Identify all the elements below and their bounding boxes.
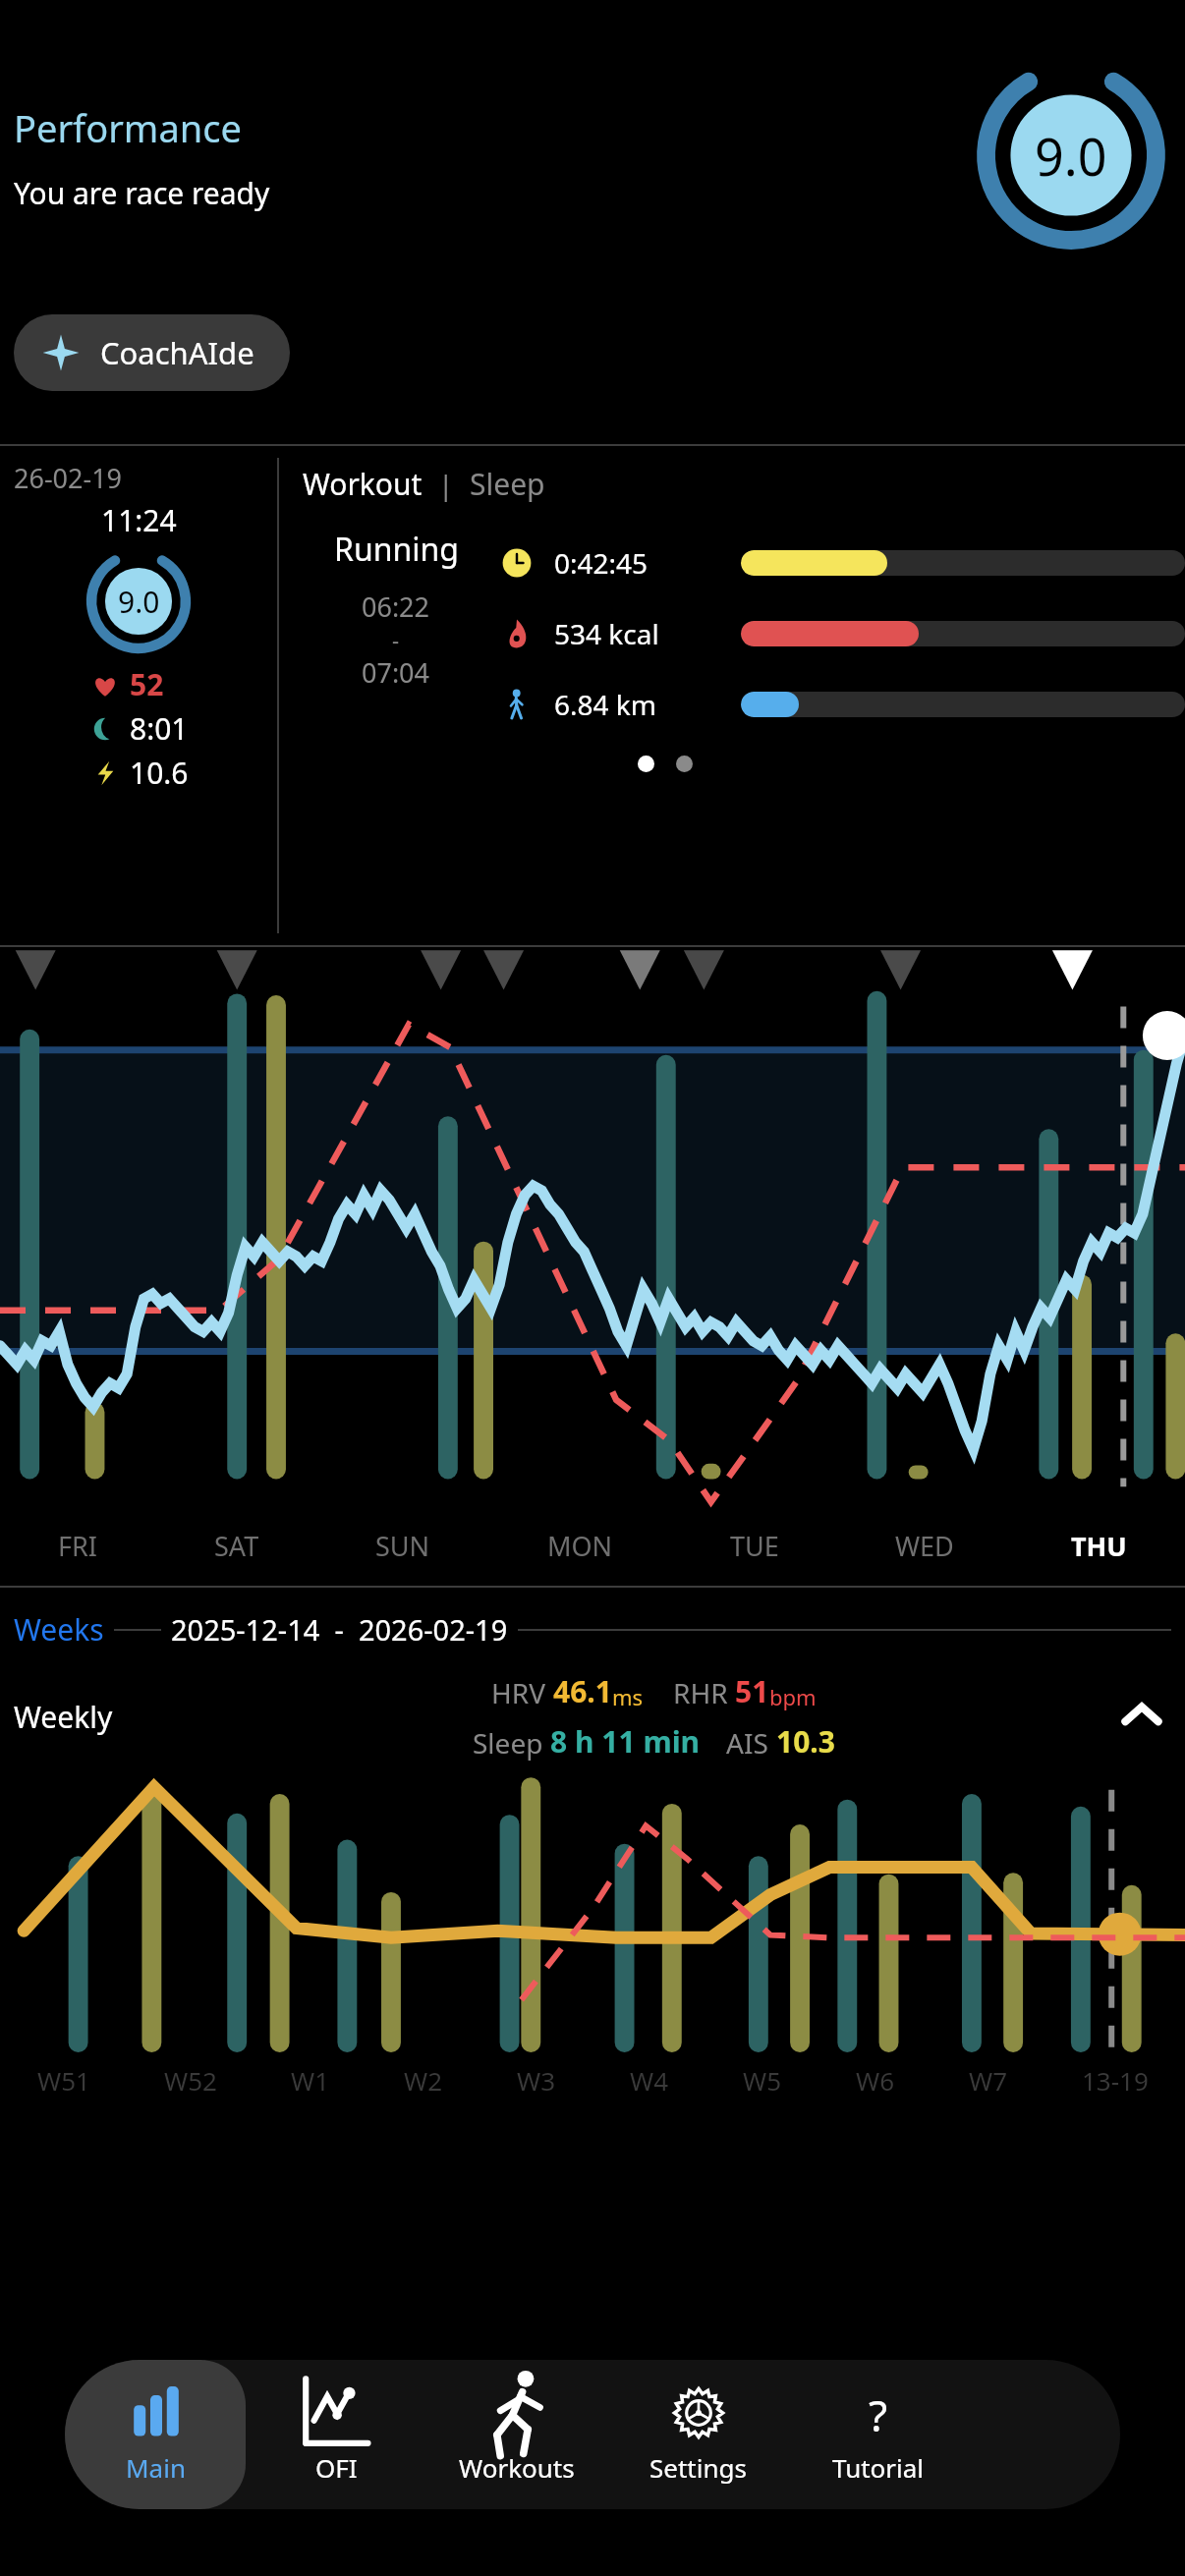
staticText: Sleep [470, 464, 545, 504]
staticText: Running [334, 528, 459, 571]
staticText: 10.6 [130, 753, 189, 793]
button[interactable]: CoachAIde [14, 314, 290, 391]
staticText: Weekly [14, 1697, 113, 1737]
staticText: W7 [969, 2063, 1008, 2098]
staticText: W5 [743, 2063, 782, 2098]
staticText: 534 kcal [554, 615, 659, 652]
staticText: ms [612, 1682, 644, 1711]
staticText: 11:24 [101, 500, 177, 540]
staticText: Workouts [459, 2450, 575, 2485]
staticText: SAT [214, 1528, 259, 1564]
staticText: 9.0 [118, 582, 160, 622]
staticText: | [438, 466, 454, 503]
staticText: 06:22 [362, 588, 430, 625]
staticText: W1 [291, 2063, 330, 2098]
staticText: 07:04 [362, 654, 430, 691]
button[interactable]: Workouts [426, 2360, 607, 2509]
button[interactable]: Workout [303, 464, 423, 504]
staticText: CoachAIde [100, 332, 254, 373]
staticText: 6.84 km [554, 686, 656, 723]
staticText: WED [895, 1528, 954, 1564]
button[interactable]: Collapse [1112, 1687, 1171, 1746]
staticText: SUN [375, 1528, 430, 1564]
staticText: Performance [14, 102, 242, 153]
staticText: 10.3 [776, 1721, 835, 1762]
button[interactable]: Weeks [14, 1609, 104, 1650]
staticText: You are race ready [14, 173, 270, 213]
staticText: RHR [673, 1674, 735, 1711]
staticText: Tutorial [832, 2450, 925, 2485]
button[interactable]: Main [65, 2360, 246, 2509]
staticText: 46.1 [553, 1671, 612, 1711]
staticText: bpm [769, 1682, 817, 1711]
staticText: Settings [649, 2450, 747, 2485]
staticText: 8:01 [130, 708, 189, 749]
staticText: 51 [735, 1671, 769, 1711]
staticText: FRI [58, 1528, 97, 1564]
staticText: THU [1071, 1528, 1127, 1564]
staticText: AIS [726, 1724, 776, 1762]
staticText: Main [126, 2450, 186, 2485]
staticText: W4 [630, 2063, 669, 2098]
button[interactable]: Settings [607, 2360, 788, 2509]
staticText: ? [869, 2385, 888, 2440]
staticText: 8 h 11 min [550, 1721, 701, 1762]
staticText: 0:42:45 [554, 544, 649, 582]
staticText: W3 [517, 2063, 556, 2098]
staticText: W6 [856, 2063, 895, 2098]
staticText: HRV [491, 1674, 553, 1711]
staticText: W2 [404, 2063, 443, 2098]
staticText: TUE [730, 1528, 779, 1564]
staticText: Workout [303, 464, 423, 504]
staticText: 2025-12-14 - 2026-02-19 [171, 1610, 508, 1649]
staticText: 52 [130, 664, 164, 704]
button[interactable]: ? [788, 2360, 969, 2509]
staticText: 9.0 [1035, 121, 1107, 191]
staticText: Weeks [14, 1609, 104, 1650]
staticText: Sleep [473, 1724, 550, 1762]
staticText: MON [547, 1528, 613, 1564]
button[interactable]: Sleep [470, 464, 545, 504]
button[interactable]: OFI [246, 2360, 426, 2509]
staticText: 13-19 [1082, 2063, 1149, 2098]
staticText: W52 [164, 2063, 217, 2098]
staticText: OFI [315, 2450, 358, 2485]
staticText: 26-02-19 [14, 460, 123, 496]
staticText: - [392, 625, 400, 654]
staticText: W51 [37, 2063, 90, 2098]
